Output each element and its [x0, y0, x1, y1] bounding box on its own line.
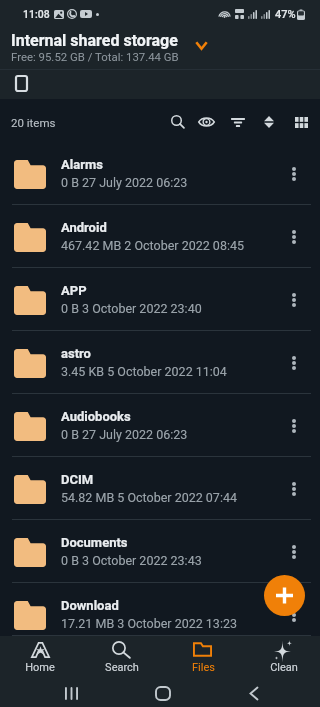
- staticText: 0 B 3 October 2022 23:43: [61, 553, 202, 568]
- button[interactable]: Alarms: [0, 142, 320, 205]
- staticText: 0 B 27 July 2022 06:23: [61, 175, 188, 190]
- button[interactable]: More options: [280, 160, 308, 188]
- button[interactable]: Grid view: [286, 107, 316, 137]
- button[interactable]: Home: [10, 636, 70, 679]
- staticText: Android: [61, 220, 107, 235]
- button[interactable]: More options: [280, 601, 308, 629]
- button[interactable]: Show hidden files: [191, 107, 221, 137]
- staticText: Documents: [61, 535, 128, 550]
- staticText: APP: [61, 283, 87, 298]
- staticText: 17.21 MB 3 October 2022 13:23: [61, 616, 237, 631]
- button[interactable]: Back: [239, 679, 268, 707]
- button[interactable]: More options: [280, 223, 308, 251]
- staticText: 0 B 27 July 2022 06:23: [61, 427, 188, 442]
- staticText: Home: [25, 661, 55, 674]
- staticText: 3.45 KB 5 October 2022 11:04: [61, 364, 227, 379]
- button[interactable]: More options: [280, 475, 308, 503]
- staticText: 467.42 MB 2 October 2022 08:45: [61, 238, 245, 253]
- button[interactable]: Files: [173, 636, 233, 679]
- button[interactable]: More options: [280, 286, 308, 314]
- staticText: Alarms: [61, 157, 103, 172]
- staticText: DCIM: [61, 472, 94, 487]
- button[interactable]: Add: [264, 575, 305, 616]
- button[interactable]: More options: [280, 538, 308, 566]
- staticText: Search: [105, 661, 139, 674]
- button[interactable]: Change storage: [189, 33, 213, 57]
- button[interactable]: Search: [163, 107, 193, 137]
- staticText: 20 items: [11, 116, 56, 129]
- button[interactable]: Documents: [0, 520, 320, 583]
- staticText: Files: [192, 661, 215, 674]
- staticText: Clean: [270, 661, 298, 674]
- button[interactable]: More options: [280, 349, 308, 377]
- staticText: Internal shared storage: [11, 31, 178, 50]
- button[interactable]: Filter: [223, 107, 253, 137]
- button[interactable]: Search: [92, 636, 152, 679]
- staticText: 11:08: [23, 8, 50, 20]
- button[interactable]: Internal storage: [9, 71, 34, 96]
- staticText: Audiobooks: [61, 409, 131, 424]
- staticText: Free: 95.52 GB / Total: 137.44 GB: [11, 50, 179, 63]
- button[interactable]: Sort: [254, 107, 284, 137]
- staticText: Download: [61, 598, 119, 613]
- button[interactable]: Audiobooks: [0, 394, 320, 457]
- staticText: astro: [61, 346, 91, 361]
- staticText: 47%: [275, 8, 296, 21]
- button[interactable]: APP: [0, 268, 320, 331]
- button[interactable]: DCIM: [0, 457, 320, 520]
- button[interactable]: astro: [0, 331, 320, 394]
- button[interactable]: Android: [0, 205, 320, 268]
- button[interactable]: Recents: [57, 679, 86, 707]
- staticText: 54.82 MB 5 October 2022 07:44: [61, 490, 237, 505]
- button[interactable]: Download: [0, 583, 320, 636]
- button[interactable]: Clean: [254, 636, 314, 679]
- button[interactable]: More options: [280, 412, 308, 440]
- staticText: 0 B 3 October 2022 23:40: [61, 301, 202, 316]
- button[interactable]: Home: [148, 679, 177, 707]
